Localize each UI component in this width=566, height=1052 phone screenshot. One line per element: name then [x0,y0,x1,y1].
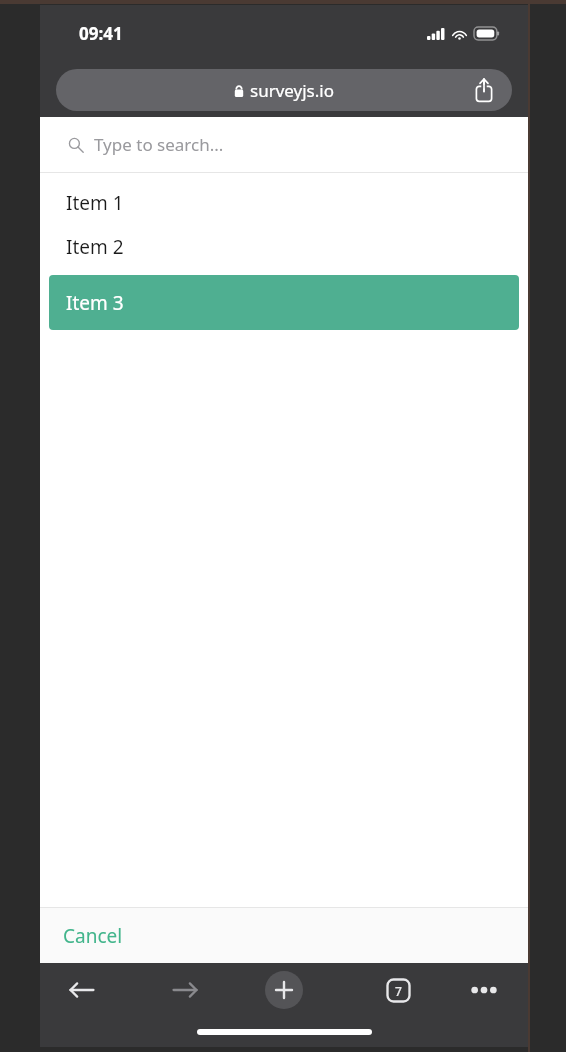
staticText: 09:41 [79,22,123,45]
button[interactable]: Back [60,968,104,1012]
button[interactable]: Cancel [40,908,528,963]
button[interactable]: surveyjs.io [56,69,512,111]
staticText: Item 1 [66,190,124,216]
staticText: surveyjs.io [250,79,334,102]
staticText: Item 3 [66,290,124,316]
button[interactable]: Item 1 [49,187,519,219]
button[interactable]: Forward [163,968,207,1012]
button[interactable]: Type to search... [40,117,528,172]
staticText: Type to search... [94,133,224,156]
staticText: Cancel [63,923,123,949]
staticText: 7 [395,983,402,999]
button[interactable]: Item 3 [49,275,519,330]
staticText: Item 2 [66,234,124,260]
button[interactable]: Tabs [378,970,418,1010]
button[interactable]: More [462,968,506,1012]
button[interactable]: Item 2 [49,231,519,263]
button[interactable]: New tab [265,971,303,1009]
button[interactable]: Share [470,76,498,104]
